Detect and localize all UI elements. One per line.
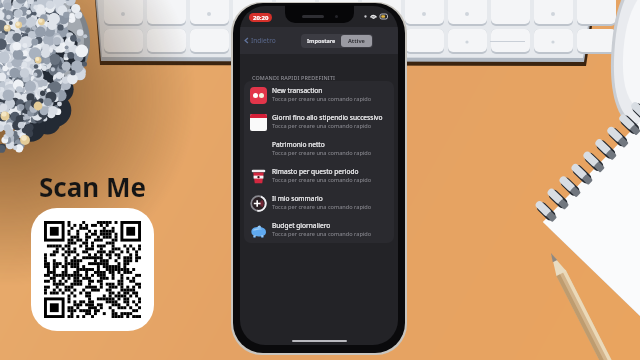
staticText: Attive	[348, 37, 365, 45]
button[interactable]: Giorni fino allo stipendio successivo	[244, 108, 394, 135]
staticText: 20:20	[253, 14, 269, 22]
staticText: Budget giornaliero	[272, 221, 331, 230]
staticText: Impostare	[307, 37, 336, 45]
staticText: Scan Me	[39, 169, 147, 204]
staticText: Tocca per creare una comando rapido	[272, 176, 372, 184]
staticText: Il mio sommario	[272, 194, 323, 203]
button[interactable]: Indietro	[240, 36, 276, 45]
staticText: Giorni fino allo stipendio successivo	[272, 113, 383, 122]
button[interactable]: Patrimonio netto	[244, 135, 394, 162]
button[interactable]: Il mio sommario	[244, 189, 394, 216]
staticText: Indietro	[251, 36, 276, 45]
button[interactable]: Impostare	[302, 35, 341, 47]
staticText: New transaction	[272, 86, 323, 95]
staticText: Tocca per creare una comando rapido	[272, 122, 372, 130]
staticText: Rimasto per questo periodo	[272, 167, 359, 176]
button[interactable]: Rimasto per questo periodo	[244, 162, 394, 189]
staticText: Tocca per creare una comando rapido	[272, 230, 372, 238]
button[interactable]: New transaction	[244, 81, 394, 108]
staticText: Tocca per creare una comando rapido	[272, 95, 372, 103]
staticText: Patrimonio netto	[272, 140, 325, 149]
staticText: Tocca per creare una comando rapido	[272, 203, 372, 211]
button[interactable]: Attive	[341, 35, 372, 47]
staticText: Tocca per creare una comando rapido	[272, 149, 372, 157]
staticText: COMANDI RAPIDI PREDEFINITI	[252, 74, 336, 81]
button[interactable]: Budget giornaliero	[244, 216, 394, 243]
